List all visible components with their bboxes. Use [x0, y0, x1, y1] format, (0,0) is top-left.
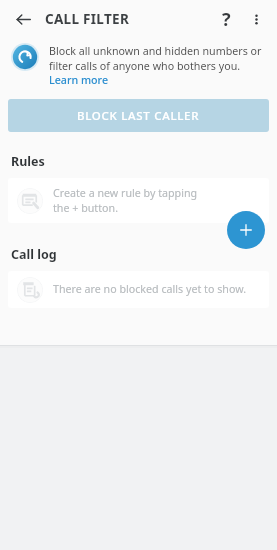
- staticText: ?: [222, 7, 231, 32]
- staticText: There are no blocked calls yet to show.: [53, 282, 263, 297]
- button[interactable]: BLOCK LAST CALLER: [8, 99, 269, 132]
- staticText: Call log: [11, 246, 57, 263]
- button[interactable]: More options: [241, 4, 271, 34]
- button[interactable]: There are no blocked calls yet to show.: [8, 271, 269, 308]
- staticText: Rules: [11, 153, 45, 170]
- button[interactable]: Create a new rule by tapping the + butto…: [8, 178, 269, 223]
- button[interactable]: Back: [8, 4, 38, 34]
- staticText: BLOCK LAST CALLER: [77, 108, 200, 124]
- button[interactable]: Help: [211, 4, 241, 34]
- button[interactable]: Add rule: [227, 211, 265, 249]
- staticText: Block all unknown and hidden numbers or …: [49, 44, 269, 88]
- staticText: CALL FILTER: [45, 10, 130, 28]
- staticText: Create a new rule by tapping the + butto…: [53, 186, 203, 216]
